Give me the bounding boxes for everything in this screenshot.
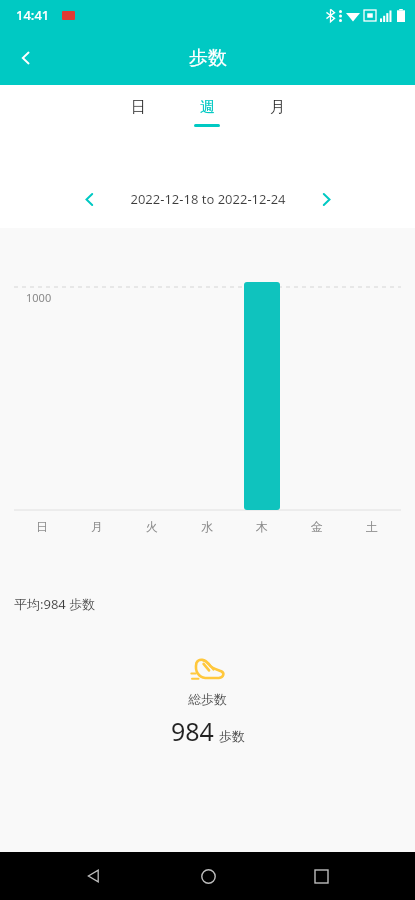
staticText: 水 [201, 519, 213, 534]
staticText: 1000 [26, 290, 52, 305]
staticText: 火 [146, 519, 158, 534]
button[interactable]: 週 [172, 98, 242, 127]
staticText: 月 [270, 98, 285, 117]
staticText: 平均:984 歩数 [14, 595, 96, 613]
staticText: 週 [200, 98, 215, 117]
button[interactable]: Back [74, 856, 114, 896]
staticText: 木 [256, 519, 268, 534]
staticText: 歩数 [219, 728, 245, 744]
staticText: 14:41 [16, 6, 50, 24]
staticText: 月 [91, 519, 103, 534]
button[interactable]: Next week [309, 182, 343, 216]
staticText: 日 [131, 98, 146, 117]
button[interactable]: Home [188, 856, 228, 896]
button[interactable]: 月 [242, 98, 312, 124]
staticText: 2022-12-18 to 2022-12-24 [130, 190, 286, 208]
staticText: 日 [36, 519, 48, 534]
button[interactable]: 日 [103, 98, 173, 124]
staticText: 総歩数 [188, 691, 227, 707]
staticText: 歩数 [189, 46, 227, 70]
staticText: 金 [311, 519, 323, 534]
button[interactable]: Previous week [72, 182, 106, 216]
staticText: 984 [171, 714, 214, 748]
button[interactable]: Back [4, 36, 48, 80]
staticText: 土 [366, 519, 378, 534]
button[interactable]: Recent apps [301, 856, 341, 896]
